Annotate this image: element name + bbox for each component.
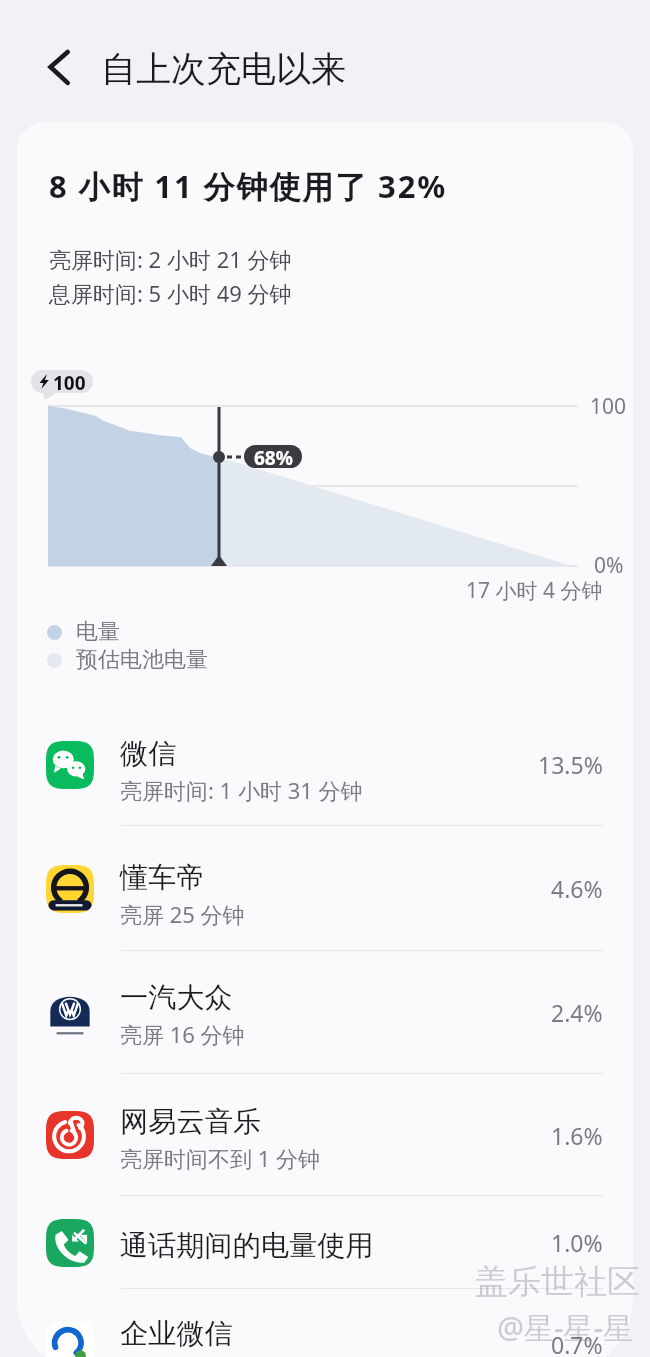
staticText: @星-星-星	[497, 1307, 634, 1348]
button[interactable]: 懂车帝	[17, 826, 633, 951]
staticText: 0%	[594, 551, 624, 580]
staticText: 亮屏时间不到 1 分钟	[120, 1143, 321, 1173]
button[interactable]: 网易云音乐	[17, 1074, 633, 1196]
staticText: 亮屏时间: 2 小时 21 分钟	[49, 244, 292, 274]
staticText: 息屏时间: 5 小时 49 分钟	[49, 278, 292, 308]
staticText: 0.7%	[551, 1329, 603, 1357]
staticText: 懂车帝	[120, 860, 205, 895]
staticText: 1.0%	[551, 1227, 603, 1258]
button[interactable]: Back	[36, 45, 80, 89]
staticText: 2.4%	[551, 997, 603, 1028]
staticText: 自上次充电以来	[101, 47, 346, 91]
staticText: 17 小时 4 分钟	[466, 576, 603, 605]
staticText: 8 小时 11 分钟使用了 32%	[49, 165, 448, 207]
staticText: 网易云音乐	[120, 1104, 261, 1139]
button[interactable]: 微信	[17, 703, 633, 826]
staticText: 亮屏 25 分钟	[120, 899, 245, 929]
button[interactable]: 一汽大众	[17, 951, 633, 1074]
staticText: 电量	[76, 618, 120, 646]
staticText: 企业微信	[120, 1316, 233, 1351]
staticText: 微信	[120, 736, 177, 771]
staticText: 13.5%	[538, 749, 603, 780]
staticText: 亮屏 16 分钟	[120, 1019, 245, 1049]
staticText: 68%	[254, 445, 293, 468]
staticText: 通话期间的电量使用	[120, 1228, 374, 1263]
staticText: 100	[590, 392, 627, 421]
button[interactable]: 企业微信	[17, 1283, 633, 1357]
staticText: 盖乐世社区	[475, 1261, 640, 1303]
staticText: 亮屏时间: 1 小时 31 分钟	[120, 775, 363, 805]
staticText: 1.6%	[551, 1120, 603, 1151]
staticText: 4.6%	[551, 873, 603, 904]
staticText: 一汽大众	[120, 980, 233, 1015]
button[interactable]: 通话期间的电量使用	[17, 1196, 633, 1289]
staticText: 100	[53, 370, 86, 393]
staticText: 预估电池电量	[76, 646, 208, 674]
